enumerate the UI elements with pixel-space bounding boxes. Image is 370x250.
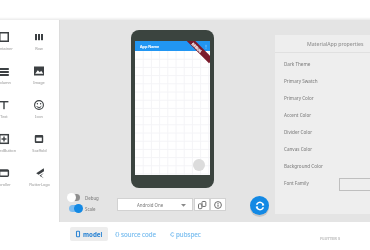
button[interactable]: Text — [0, 100, 19, 126]
staticText: DEBUG — [191, 41, 203, 54]
button[interactable]: Row — [24, 32, 54, 58]
button[interactable]: Canvas Color — [275, 140, 370, 157]
staticText: FlutterLogo — [29, 182, 50, 187]
staticText: Canvas Color — [284, 146, 313, 152]
button[interactable]: Refresh — [250, 196, 269, 215]
staticText: source code — [121, 230, 157, 238]
staticText: Container — [0, 46, 13, 51]
staticText: Divider Color — [284, 129, 313, 135]
button[interactable]: Column — [0, 66, 19, 92]
button[interactable]: Image — [24, 66, 54, 92]
staticText: Background Color — [284, 163, 323, 169]
staticText: FLUTTER S — [320, 236, 341, 241]
button[interactable]: pubspec — [166, 227, 205, 241]
staticText: Debug — [85, 195, 99, 201]
button[interactable]: Divider Color — [275, 123, 370, 140]
staticText: Image — [33, 80, 45, 85]
staticText: Scaffold — [32, 148, 47, 153]
button[interactable]: Dark Theme — [275, 55, 370, 72]
button[interactable]: Android One — [117, 198, 193, 211]
button[interactable]: Primary Color — [275, 89, 370, 106]
staticText: App Name — [140, 44, 160, 49]
button[interactable]: Accent Color — [275, 106, 370, 123]
button[interactable]: Scroller — [0, 168, 19, 194]
staticText: Text — [0, 114, 8, 119]
staticText: {} — [115, 230, 120, 238]
button[interactable]: {} — [111, 227, 161, 241]
staticText: Dark Theme — [284, 61, 311, 67]
staticText: Primary Color — [284, 95, 314, 101]
button[interactable]: Container — [0, 32, 19, 58]
button[interactable]: Font Family — [275, 174, 370, 191]
staticText: RaisedButton — [0, 148, 16, 153]
button[interactable]: model — [70, 227, 108, 241]
staticText: Column — [0, 80, 11, 85]
staticText: pubspec — [176, 230, 201, 238]
button[interactable]: RaisedButton — [0, 134, 19, 160]
button[interactable]: Scaffold — [24, 134, 54, 160]
staticText: Row — [35, 46, 43, 51]
button[interactable]: Debug — [67, 193, 99, 202]
staticText: Android One — [137, 202, 164, 208]
staticText: Scale — [85, 206, 96, 212]
staticText: model — [83, 230, 103, 238]
staticText: Icon — [35, 114, 43, 119]
button[interactable]: Info — [210, 198, 226, 211]
staticText: Primary Swatch — [284, 78, 318, 84]
staticText: MaterialApp properties — [307, 40, 364, 47]
button[interactable]: Add — [193, 159, 205, 171]
button[interactable]: Rotate device — [194, 198, 210, 211]
staticText: Scroller — [0, 182, 11, 187]
button[interactable]: Icon — [24, 100, 54, 126]
staticText: Accent Color — [284, 112, 312, 118]
button[interactable]: Primary Swatch — [275, 72, 370, 89]
button[interactable]: FlutterLogo — [24, 168, 54, 194]
staticText: Font Family — [284, 180, 309, 186]
button[interactable] — [339, 178, 370, 191]
button[interactable]: Background Color — [275, 157, 370, 174]
button[interactable]: Scale — [67, 204, 96, 213]
